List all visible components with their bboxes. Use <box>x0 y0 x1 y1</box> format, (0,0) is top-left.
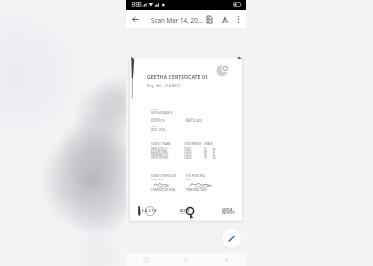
staticText: CS203 <box>184 153 192 157</box>
staticText: CS204 <box>184 156 192 160</box>
staticText: A <box>213 153 215 157</box>
staticText: PRINCIPAL SIGN <box>186 188 207 192</box>
staticText: THE PRINCIPAL <box>186 174 206 178</box>
staticText: CONTROLLER SIGN <box>151 188 176 192</box>
staticText: GRADE <box>204 142 214 146</box>
staticText: CS201 <box>184 147 192 151</box>
staticText: MAR 14 2024 <box>186 119 202 123</box>
staticText: 79 <box>204 156 207 160</box>
staticText: 2023 - 2024 <box>151 128 166 132</box>
staticText: EXAM CONTROLLER <box>151 174 176 178</box>
staticText: CODE <box>184 142 192 146</box>
button[interactable]: Edit <box>222 229 241 248</box>
staticText: B+ <box>213 156 217 160</box>
staticText: MARKS <box>192 142 202 146</box>
staticText: Reg. No : 21AB4C5 <box>147 84 181 88</box>
staticText: B.TECH CSE <box>151 119 165 123</box>
staticText: Scan Mar 14, 20... <box>151 16 203 25</box>
staticText: CS202 <box>184 150 192 154</box>
staticText: E.A.L.T.X <box>142 209 157 213</box>
button[interactable]: Navigate up <box>129 10 141 28</box>
staticText: DATA STRUCT <box>151 147 168 151</box>
button[interactable]: Save to Drive <box>219 14 231 24</box>
staticText: SUBJECT NAME <box>151 142 171 146</box>
staticText: 88 <box>204 150 207 154</box>
staticText: DATE 14/03 <box>151 177 164 180</box>
staticText: 84 <box>204 153 207 157</box>
staticText: approved <box>180 212 189 215</box>
staticText: INSTITUTE <box>222 211 235 214</box>
button[interactable]: Search text in document <box>203 14 215 24</box>
staticText: GEETHA RAJAN M <box>151 111 173 115</box>
button[interactable]: More options <box>233 14 244 24</box>
staticText: COURSE <box>151 117 160 120</box>
staticText: A <box>213 150 215 154</box>
staticText: 91 <box>204 147 207 151</box>
staticText: A+ <box>213 147 217 151</box>
staticText: GEETHA <box>222 208 233 212</box>
staticText: SEAL <box>186 177 192 180</box>
staticText: ALGORITHMS <box>151 150 168 154</box>
staticText: ISSUED <box>186 117 194 120</box>
staticText: DATABASE SYS <box>151 153 169 157</box>
staticText: YEAR <box>151 125 157 128</box>
staticText: AICTE <box>180 208 190 213</box>
staticText: OPER SYSTEM <box>151 156 168 160</box>
staticText: GEETHA CERTIFICATE 01 <box>147 73 208 80</box>
staticText: NAME <box>151 108 158 111</box>
